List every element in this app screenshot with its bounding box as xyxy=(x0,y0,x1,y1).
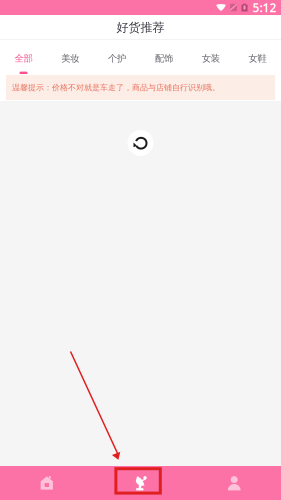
staticText: 全部 xyxy=(14,53,32,64)
staticText: 配饰 xyxy=(155,53,173,64)
staticText: 女鞋 xyxy=(248,53,266,64)
button[interactable]: 美妆 xyxy=(47,40,94,74)
button[interactable]: 女装 xyxy=(187,40,234,74)
staticText: 美妆 xyxy=(61,53,79,64)
staticText: 个护 xyxy=(108,53,126,64)
staticText: 温馨提示：价格不对就是车走了，商品与店铺自行识别哦。 xyxy=(12,83,220,92)
button[interactable]: 个护 xyxy=(94,40,140,74)
button[interactable]: 全部 xyxy=(0,40,47,74)
button[interactable]: 首页 xyxy=(0,466,94,500)
button[interactable]: 女鞋 xyxy=(234,40,281,74)
button[interactable]: 我的 xyxy=(187,466,281,500)
staticText: 女装 xyxy=(202,53,220,64)
button[interactable]: 配饰 xyxy=(140,40,187,74)
staticText: 5:12 xyxy=(252,0,276,15)
button[interactable]: 发现 xyxy=(94,466,187,500)
staticText: 好货推荐 xyxy=(116,20,164,35)
